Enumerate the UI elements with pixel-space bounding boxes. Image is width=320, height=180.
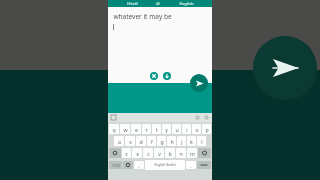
button[interactable]: d [136, 136, 146, 146]
button[interactable]: q [109, 124, 119, 134]
button[interactable]: g [157, 136, 166, 146]
button[interactable]: w [120, 124, 130, 134]
button[interactable]: . [186, 161, 196, 169]
button[interactable]: i [182, 124, 191, 134]
staticText: . [190, 162, 192, 169]
staticText: Hindi [127, 1, 138, 7]
button[interactable]: Settings [204, 115, 209, 120]
staticText: ⇄ [156, 1, 160, 6]
button[interactable]: Download [163, 72, 171, 80]
staticText: k [190, 138, 193, 145]
button[interactable]: ?123 [109, 161, 122, 169]
staticText: b [168, 150, 172, 157]
button[interactable]: Send [253, 36, 317, 100]
staticText: l [201, 138, 203, 145]
button[interactable]: Emoji [123, 161, 133, 169]
button[interactable]: z [122, 148, 131, 158]
button[interactable]: k [187, 136, 196, 146]
staticText: a [118, 138, 121, 145]
button[interactable]: m [187, 148, 197, 158]
button[interactable]: b [165, 148, 175, 158]
button[interactable]: c [143, 148, 153, 158]
staticText: v [158, 150, 161, 157]
staticText: z [125, 150, 128, 157]
staticText: p [205, 126, 209, 133]
button[interactable]: English [179, 1, 194, 7]
staticText: English (India) [154, 163, 176, 167]
button[interactable]: j [177, 136, 186, 146]
button[interactable]: Send message [190, 74, 208, 92]
button[interactable]: y [162, 124, 171, 134]
button[interactable]: r [142, 124, 151, 134]
staticText: t [156, 126, 158, 133]
button[interactable]: Shift [109, 148, 121, 158]
button[interactable]: Voice [195, 115, 200, 120]
staticText: c [147, 150, 150, 157]
button[interactable]: t [152, 124, 161, 134]
staticText: i [186, 126, 188, 133]
button[interactable]: , [134, 161, 144, 169]
button[interactable]: Backspace [198, 148, 211, 158]
staticText: e [135, 126, 138, 133]
staticText: g [160, 138, 164, 145]
button[interactable]: o [192, 124, 201, 134]
button[interactable] [111, 115, 116, 120]
staticText: whatever it may be [113, 12, 172, 21]
button[interactable]: Clear [150, 72, 158, 80]
button[interactable]: ⇄ [156, 1, 160, 6]
button[interactable]: v [154, 148, 164, 158]
staticText: English [179, 1, 194, 7]
staticText: m [190, 150, 195, 157]
staticText: n [179, 150, 183, 157]
staticText: j [181, 138, 183, 145]
staticText: f [151, 138, 153, 145]
button[interactable]: u [172, 124, 181, 134]
staticText: h [170, 138, 174, 145]
staticText: o [195, 126, 199, 133]
button[interactable]: h [167, 136, 176, 146]
staticText: s [129, 138, 132, 145]
staticText: ?123 [112, 163, 120, 168]
button[interactable]: s [125, 136, 135, 146]
button[interactable]: x [132, 148, 142, 158]
button[interactable]: a [114, 136, 124, 146]
button[interactable]: l [197, 136, 206, 146]
button[interactable]: Enter [197, 161, 211, 169]
button[interactable]: e [131, 124, 141, 134]
staticText: w [123, 126, 128, 133]
staticText: x [136, 150, 139, 157]
button[interactable]: Hindi [127, 1, 138, 7]
staticText: , [138, 162, 140, 169]
staticText: r [145, 126, 148, 133]
button[interactable]: p [202, 124, 211, 134]
button[interactable]: n [176, 148, 186, 158]
staticText: u [175, 126, 179, 133]
button[interactable]: f [147, 136, 156, 146]
button[interactable]: English (India) [145, 160, 185, 170]
staticText: d [139, 138, 143, 145]
staticText: q [112, 126, 116, 133]
staticText: y [165, 126, 168, 133]
